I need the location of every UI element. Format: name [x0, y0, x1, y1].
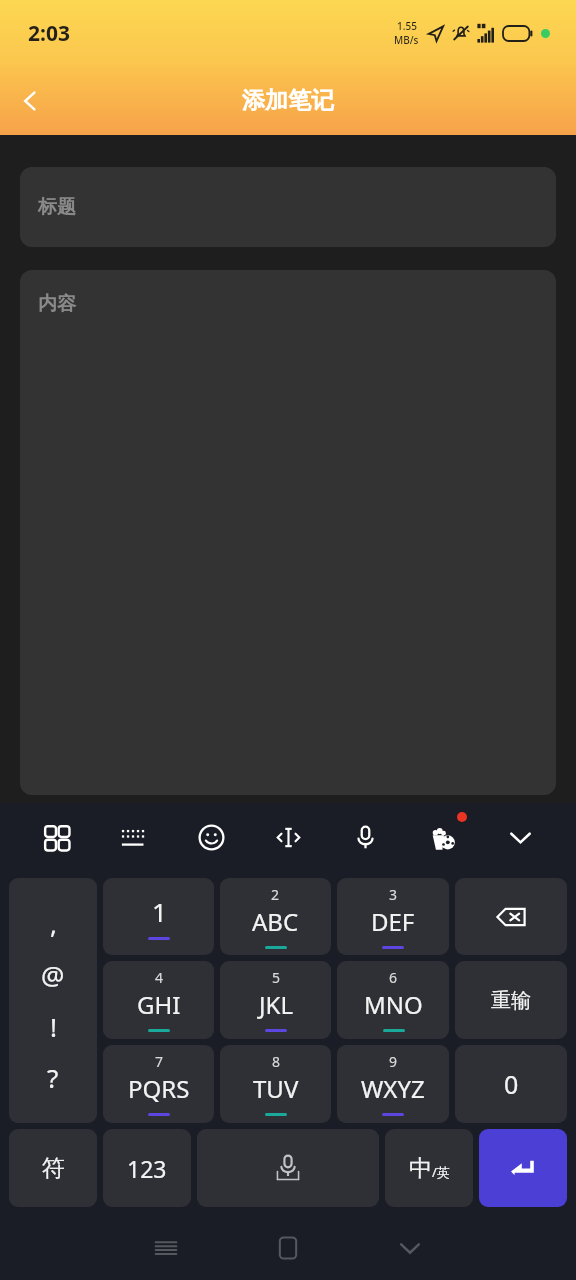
staticText: 1.55 [397, 19, 417, 33]
staticText: PQRS [128, 1072, 190, 1105]
staticText: 1 [152, 894, 167, 929]
staticText: JKL [259, 988, 293, 1021]
button[interactable]: 0 [455, 1045, 567, 1123]
staticText: TUV [253, 1072, 299, 1105]
staticText: GHI [137, 988, 181, 1021]
button[interactable]: 2 [220, 878, 331, 955]
button[interactable]: 6 [337, 961, 449, 1039]
staticText: 添加笔记 [242, 86, 334, 115]
staticText: MNO [364, 988, 423, 1021]
staticText: /英 [432, 1163, 450, 1181]
staticText: 符 [42, 1154, 65, 1183]
button[interactable]: 8 [220, 1045, 331, 1123]
button[interactable]: Stickers [421, 815, 465, 859]
staticText: 内容 [38, 292, 76, 316]
button[interactable]: Back [373, 1215, 447, 1280]
button[interactable]: 3 [337, 878, 449, 955]
staticText: DEF [371, 905, 415, 938]
staticText: @ [41, 957, 65, 992]
staticText: WXYZ [361, 1072, 425, 1105]
staticText: 2:03 [28, 19, 70, 48]
button[interactable]: 中 [385, 1129, 473, 1207]
button[interactable]: Keyboard [111, 815, 155, 859]
button[interactable]: 重输 [455, 961, 567, 1039]
button[interactable]: Emoji [189, 815, 233, 859]
button[interactable]: 9 [337, 1045, 449, 1123]
button[interactable]: 7 [103, 1045, 214, 1123]
staticText: 重输 [491, 988, 531, 1013]
button[interactable]: 符 [9, 1129, 97, 1207]
staticText: 中 [409, 1154, 432, 1183]
button[interactable]: Home [251, 1215, 325, 1280]
staticText: 9 [389, 1052, 398, 1071]
staticText: 123 [127, 1153, 167, 1184]
button[interactable]: Voice input [343, 815, 387, 859]
staticText: 5 [272, 968, 281, 987]
button[interactable]: 123 [103, 1129, 191, 1207]
staticText: MB/s [394, 33, 419, 47]
staticText: 4 [155, 968, 164, 987]
staticText: 8 [272, 1052, 281, 1071]
button[interactable]: Apps [34, 815, 78, 859]
button[interactable]: 5 [220, 961, 331, 1039]
button[interactable]: Move cursor [266, 815, 310, 859]
button[interactable]: 4 [103, 961, 214, 1039]
button[interactable]: Recents [129, 1215, 203, 1280]
staticText: 3 [389, 885, 398, 904]
button[interactable]: 标题 [20, 167, 556, 247]
button[interactable]: Back [6, 77, 54, 125]
staticText: 7 [155, 1052, 164, 1071]
staticText: 0 [504, 1067, 519, 1101]
button[interactable]: 1 [103, 878, 214, 955]
button[interactable]: Hide keyboard [498, 815, 542, 859]
button[interactable]: Backspace [455, 878, 567, 955]
staticText: ABC [252, 905, 299, 938]
staticText: 6 [389, 968, 398, 987]
staticText: ? [47, 1060, 59, 1095]
staticText: 2 [271, 885, 280, 904]
staticText: ! [50, 1009, 57, 1044]
button[interactable]: Enter [479, 1129, 567, 1207]
button[interactable]: , [9, 878, 97, 1123]
staticText: , [50, 906, 57, 941]
button[interactable]: Space [197, 1129, 379, 1207]
staticText: 标题 [38, 195, 76, 219]
